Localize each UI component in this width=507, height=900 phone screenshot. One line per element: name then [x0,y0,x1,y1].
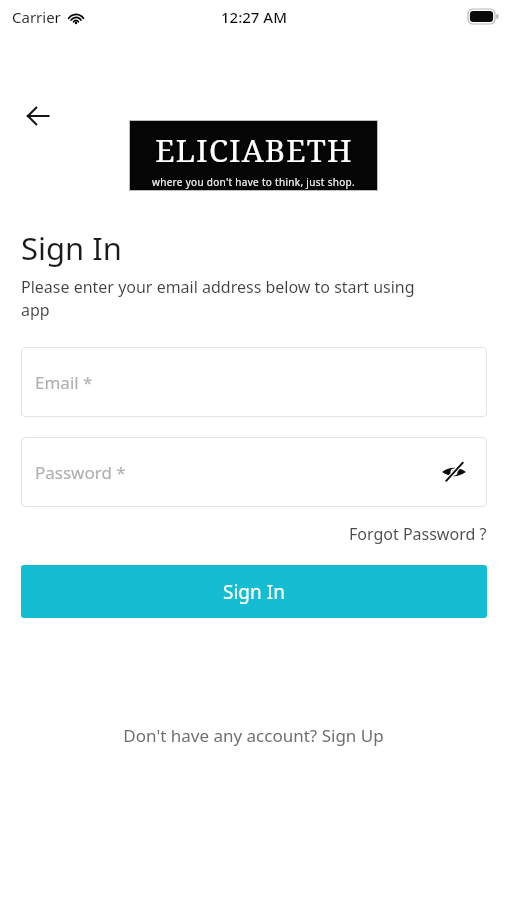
button[interactable]: Sign In [21,565,487,618]
staticText: Carrier [12,7,61,27]
button[interactable]: Forgot Password ? [21,517,487,551]
button[interactable]: Password * [21,437,487,507]
staticText: Please enter your email address below to… [21,276,431,321]
staticText: Forgot Password ? [349,523,487,545]
staticText: Email * [35,371,93,394]
staticText: ELICIABETH [155,129,353,171]
staticText: where you don't have to think, just shop… [152,175,355,189]
staticText: Password * [35,461,126,484]
button[interactable]: Don't have any account? Sign Up [0,718,507,752]
staticText: 12:27 AM [221,7,287,27]
button[interactable]: Email * [21,347,487,417]
staticText: Sign In [21,227,122,269]
button[interactable]: Show password [437,455,471,489]
staticText: Don't have any account? Sign Up [123,724,384,747]
button[interactable]: Back [14,92,62,140]
staticText: Sign In [223,579,285,605]
